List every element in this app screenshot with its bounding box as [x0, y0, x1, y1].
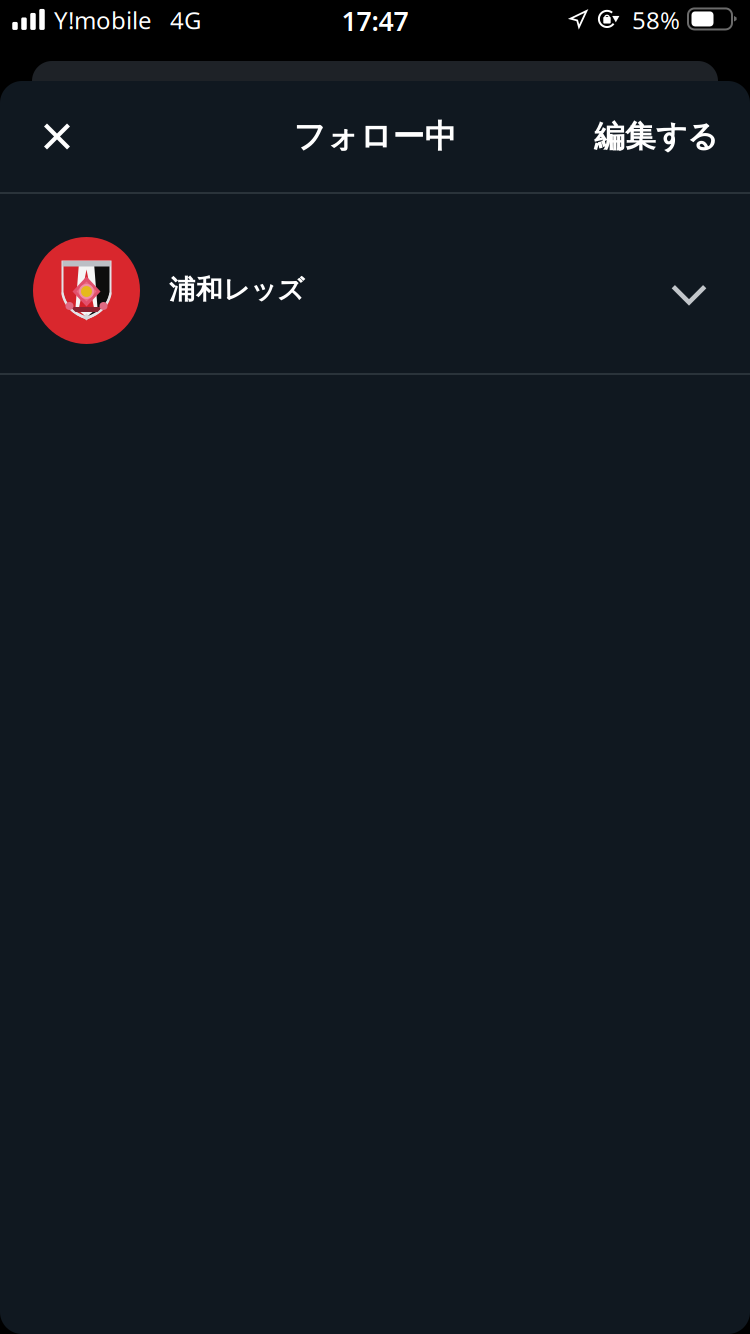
- button[interactable]: 浦和レッズ: [0, 194, 750, 373]
- staticText: Y!mobile: [54, 4, 152, 36]
- button[interactable]: Close: [29, 108, 85, 164]
- staticText: 浦和レッズ: [169, 273, 304, 306]
- staticText: フォロー中: [293, 117, 456, 156]
- button[interactable]: 編集する: [594, 108, 718, 164]
- staticText: 17:47: [341, 3, 408, 38]
- staticText: 4G: [170, 4, 201, 36]
- staticText: 編集する: [594, 118, 718, 155]
- staticText: 58%: [632, 4, 680, 36]
